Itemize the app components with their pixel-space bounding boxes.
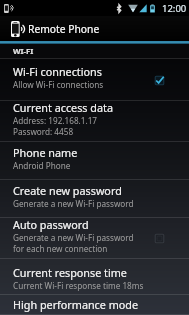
staticText: Phone name	[13, 145, 78, 160]
staticText: Current response time	[13, 265, 127, 280]
staticText: Create new password	[13, 183, 122, 198]
staticText: High performance mode	[13, 297, 139, 312]
staticText: for each new connection	[13, 243, 108, 254]
staticText: Generate a new Wi-Fi password	[13, 198, 134, 209]
staticText: Current access data	[13, 100, 113, 115]
staticText: 12:00	[162, 2, 187, 15]
other: Remote phone	[11, 21, 26, 37]
button[interactable]: WI-FI	[0, 44, 189, 59]
staticText: Current Wi-Fi response time 18ms	[13, 280, 144, 291]
staticText: Password: 4458	[13, 126, 74, 137]
staticText: Allow Wi-Fi connections	[13, 79, 104, 90]
staticText: Wi-Fi connections	[13, 64, 102, 79]
staticText: Remote Phone	[28, 22, 100, 36]
button[interactable]: Create new password	[0, 180, 189, 218]
button[interactable]: Current access data	[0, 101, 189, 142]
button[interactable]: Current response time	[0, 259, 189, 295]
button[interactable]: Auto password	[0, 218, 189, 259]
staticText: Auto password	[13, 217, 89, 232]
button[interactable]: High performance mode	[0, 295, 189, 315]
staticText: Address: 192.168.1.17	[13, 115, 98, 126]
staticText: Android Phone	[13, 160, 71, 171]
staticText: WI-FI	[13, 46, 34, 57]
button[interactable]: Phone name	[0, 142, 189, 180]
button[interactable]: Wi-Fi connections	[0, 59, 189, 101]
staticText: Generate a new Wi-Fi password	[13, 232, 134, 243]
